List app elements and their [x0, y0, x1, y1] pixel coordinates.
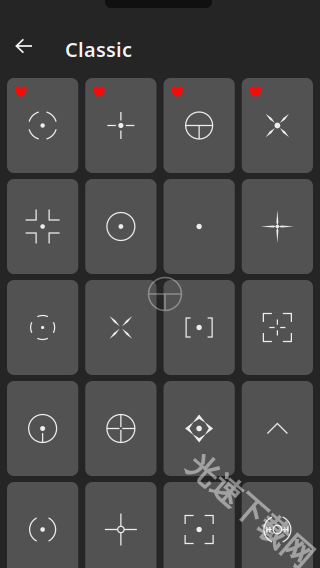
- button[interactable]: Reticle 16: [242, 381, 313, 476]
- button[interactable]: Reticle 5: [7, 179, 78, 274]
- button[interactable]: Reticle 20: [242, 482, 313, 568]
- staticText: 光速下载网: [173, 493, 320, 530]
- button[interactable]: Reticle 1: [7, 78, 78, 173]
- button[interactable]: Reticle 6: [85, 179, 156, 274]
- button[interactable]: Reticle 9: [7, 280, 78, 375]
- button[interactable]: Reticle 19: [163, 482, 235, 568]
- button[interactable]: Reticle 8: [242, 179, 313, 274]
- button[interactable]: Reticle 17: [7, 482, 78, 568]
- button[interactable]: Reticle 2: [85, 78, 156, 173]
- button[interactable]: Back: [7, 29, 41, 63]
- button[interactable]: Reticle 13: [7, 381, 78, 476]
- button[interactable]: Reticle 3: [163, 78, 235, 173]
- button[interactable]: Reticle 7: [163, 179, 235, 274]
- button[interactable]: Reticle 4: [242, 78, 313, 173]
- button[interactable]: Reticle 12: [242, 280, 313, 375]
- button[interactable]: Reticle 15: [163, 381, 235, 476]
- button[interactable]: Reticle 10: [85, 280, 156, 375]
- button[interactable]: Reticle 14: [85, 381, 156, 476]
- button[interactable]: Reticle 11: [163, 280, 235, 375]
- button[interactable]: Reticle 18: [85, 482, 156, 568]
- staticText: Classic: [65, 36, 132, 63]
